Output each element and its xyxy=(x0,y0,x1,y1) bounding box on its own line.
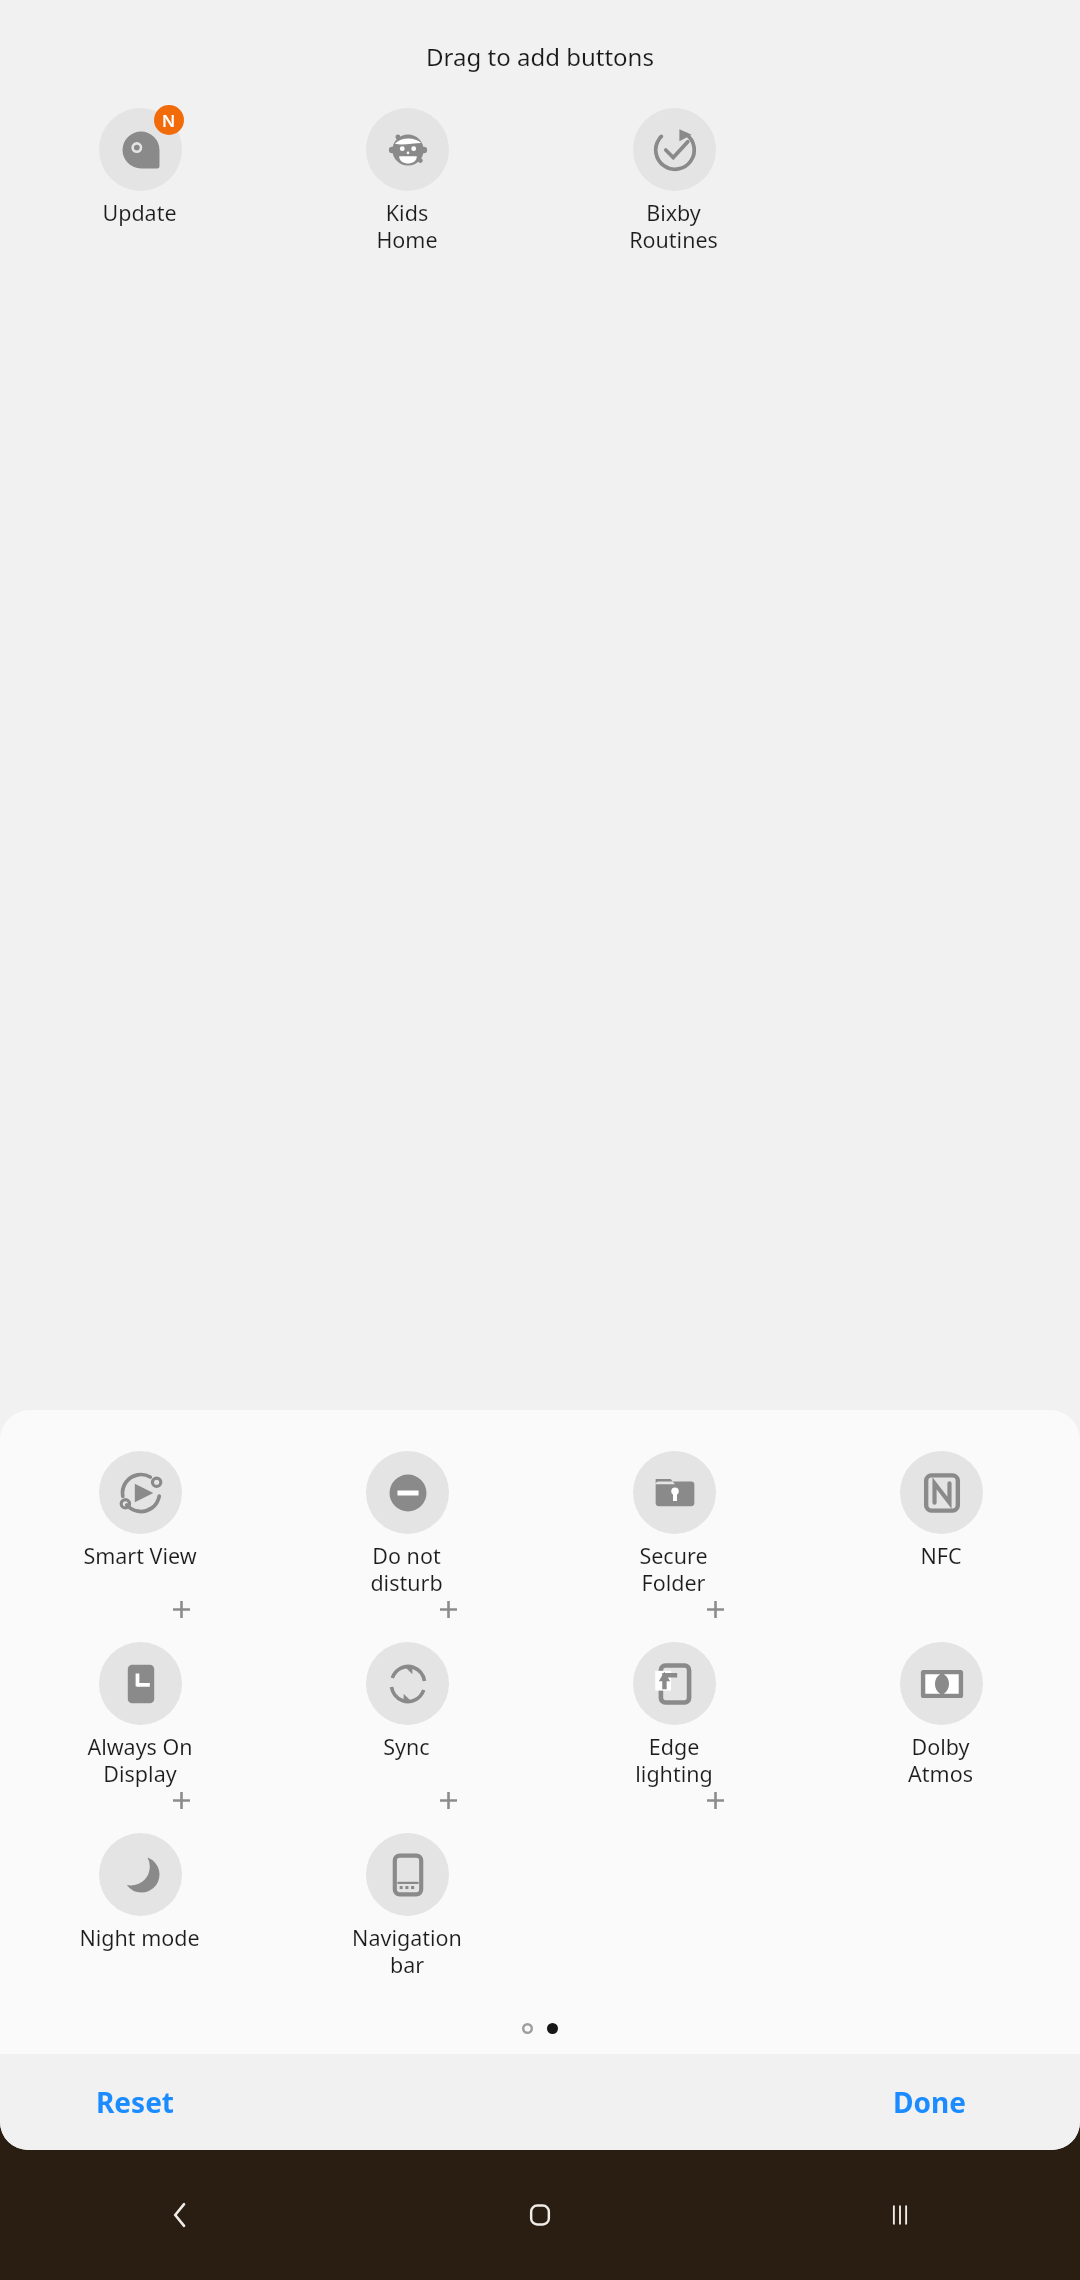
staticText: Sync xyxy=(383,1732,430,1761)
staticText: Update xyxy=(102,198,177,227)
button[interactable]: Dolby Atmos xyxy=(807,1635,1074,1792)
staticText: Kids Home xyxy=(376,198,438,254)
staticText: Done xyxy=(893,2083,966,2121)
staticText: Navigation bar xyxy=(352,1923,462,1979)
staticText: Night mode xyxy=(79,1923,200,1952)
button[interactable]: NFC xyxy=(807,1444,1074,1574)
staticText: Do not disturb xyxy=(370,1541,443,1597)
staticText: Always On Display xyxy=(87,1732,193,1788)
button[interactable]: N xyxy=(6,101,273,231)
button[interactable]: Edge lighting xyxy=(540,1635,807,1792)
staticText: Bixby Routines xyxy=(629,198,718,254)
button[interactable]: Navigation bar xyxy=(273,1826,540,1983)
button[interactable]: Night mode xyxy=(6,1826,273,1956)
button[interactable]: Home xyxy=(360,2150,720,2280)
button[interactable]: Kids Home xyxy=(273,101,540,258)
staticText: Dolby Atmos xyxy=(908,1732,973,1788)
staticText: NFC xyxy=(920,1541,962,1570)
button[interactable]: Bixby Routines xyxy=(540,101,807,258)
button[interactable]: Sync xyxy=(273,1635,540,1765)
button[interactable]: Do not disturb xyxy=(273,1444,540,1601)
staticText: Smart View xyxy=(83,1541,197,1570)
button[interactable]: Recents xyxy=(720,2150,1080,2280)
button[interactable]: Done xyxy=(883,2073,976,2131)
staticText: N xyxy=(162,109,176,132)
staticText: Drag to add buttons xyxy=(426,40,654,73)
button[interactable]: Smart View xyxy=(6,1444,273,1574)
staticText: Edge lighting xyxy=(635,1732,713,1788)
button[interactable]: Back xyxy=(0,2150,360,2280)
staticText: Secure Folder xyxy=(639,1541,708,1597)
button[interactable]: Reset xyxy=(86,2073,185,2131)
button[interactable]: Always On Display xyxy=(6,1635,273,1792)
staticText: Reset xyxy=(96,2083,175,2121)
button[interactable]: Secure Folder xyxy=(540,1444,807,1601)
